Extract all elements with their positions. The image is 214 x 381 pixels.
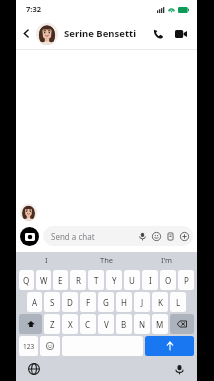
button[interactable]: O bbox=[160, 270, 176, 290]
button[interactable]: 123 bbox=[19, 336, 38, 356]
staticText: 123 bbox=[23, 342, 35, 351]
staticText: R bbox=[76, 275, 81, 286]
staticText: G bbox=[103, 297, 109, 308]
staticText: J bbox=[141, 297, 144, 308]
button[interactable]: Backspace bbox=[170, 314, 194, 334]
button[interactable]: Emoji bbox=[152, 232, 161, 241]
staticText: X bbox=[68, 319, 73, 330]
button[interactable]: Stickers bbox=[166, 232, 175, 241]
staticText: Q bbox=[23, 275, 30, 286]
staticText: P bbox=[184, 275, 189, 286]
staticText: Send a chat bbox=[51, 231, 138, 242]
button[interactable]: Y bbox=[106, 270, 122, 290]
staticText: Z bbox=[50, 319, 55, 330]
button[interactable]: Z bbox=[44, 314, 60, 334]
staticText: B bbox=[121, 319, 127, 330]
staticText: N bbox=[139, 319, 146, 330]
button[interactable]: T bbox=[88, 270, 104, 290]
button[interactable]: F bbox=[80, 292, 96, 312]
button[interactable]: X bbox=[62, 314, 78, 334]
staticText: T bbox=[94, 275, 99, 286]
button[interactable]: Send a chat bbox=[43, 226, 193, 246]
staticText: 7:32 bbox=[26, 4, 41, 14]
staticText: W bbox=[40, 275, 48, 286]
button[interactable]: I bbox=[16, 252, 77, 268]
button[interactable]: E bbox=[53, 270, 68, 290]
button[interactable]: Shift bbox=[19, 314, 42, 334]
button[interactable] bbox=[36, 23, 58, 45]
button[interactable]: B bbox=[116, 314, 132, 334]
button[interactable]: R bbox=[70, 270, 86, 290]
staticText: O bbox=[165, 275, 172, 286]
button[interactable]: Send bbox=[145, 336, 194, 356]
staticText: I bbox=[45, 255, 48, 265]
button[interactable]: Q bbox=[19, 270, 34, 290]
staticText: I'm bbox=[161, 255, 173, 265]
button[interactable]: I bbox=[142, 270, 158, 290]
button[interactable]: U bbox=[124, 270, 140, 290]
button[interactable]: A bbox=[27, 292, 42, 312]
button[interactable]: D bbox=[62, 292, 78, 312]
button[interactable]: C bbox=[80, 314, 96, 334]
button[interactable]: Voice message bbox=[138, 232, 147, 241]
button[interactable]: V bbox=[98, 314, 114, 334]
staticText: S bbox=[50, 297, 55, 308]
button[interactable]: Voice input bbox=[174, 364, 185, 375]
button[interactable]: L bbox=[170, 292, 186, 312]
staticText: M bbox=[156, 319, 164, 330]
staticText: H bbox=[121, 297, 127, 308]
staticText: Serine Bensetti bbox=[64, 27, 147, 40]
button[interactable]: I'm bbox=[137, 252, 197, 268]
button[interactable]: G bbox=[98, 292, 114, 312]
button[interactable]: P bbox=[178, 270, 194, 290]
button[interactable]: Back bbox=[16, 18, 36, 49]
button[interactable]: More bbox=[180, 232, 189, 241]
staticText: I bbox=[149, 275, 152, 286]
button[interactable]: The bbox=[77, 252, 137, 268]
button[interactable]: W bbox=[36, 270, 51, 290]
button[interactable]: J bbox=[134, 292, 150, 312]
staticText: F bbox=[86, 297, 91, 308]
staticText: A bbox=[32, 297, 38, 308]
staticText: The bbox=[100, 255, 114, 265]
button[interactable]: Change keyboard bbox=[28, 363, 40, 375]
staticText: L bbox=[176, 297, 181, 308]
button[interactable]: Camera bbox=[20, 227, 39, 246]
staticText: D bbox=[67, 297, 73, 308]
button[interactable]: Video call bbox=[169, 18, 193, 49]
staticText: Y bbox=[112, 275, 117, 286]
button[interactable]: H bbox=[116, 292, 132, 312]
staticText: K bbox=[158, 297, 163, 308]
staticText: U bbox=[129, 275, 135, 286]
staticText: V bbox=[104, 319, 109, 330]
button[interactable]: M bbox=[152, 314, 168, 334]
button[interactable]: Emoji keyboard bbox=[40, 336, 60, 356]
button[interactable]: Voice call bbox=[147, 18, 169, 49]
button[interactable]: N bbox=[134, 314, 150, 334]
staticText: E bbox=[58, 275, 63, 286]
button[interactable]: K bbox=[152, 292, 168, 312]
staticText: C bbox=[85, 319, 91, 330]
button[interactable]: S bbox=[44, 292, 60, 312]
